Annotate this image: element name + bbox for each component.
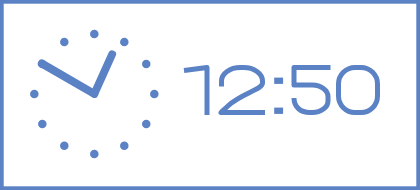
button[interactable]: Clock showing 12:50 — [0, 0, 420, 190]
